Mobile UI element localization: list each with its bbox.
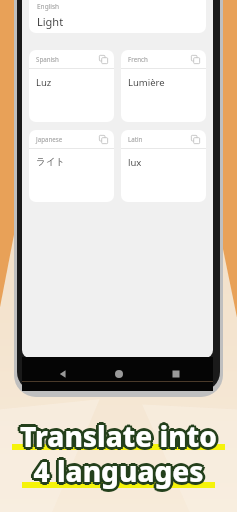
button[interactable]: French — [121, 50, 206, 122]
staticText: Japanese — [36, 135, 99, 143]
staticText: Lumière — [128, 76, 165, 89]
staticText: Translate into — [0, 415, 237, 453]
staticText: 4 languages — [2, 452, 237, 490]
button[interactable]: Copy Latin translation — [191, 135, 200, 144]
staticText: English — [37, 2, 60, 11]
staticText: 4 languages — [3, 452, 237, 490]
staticText: Translate into — [2, 417, 237, 455]
button[interactable]: Spanish — [29, 50, 114, 122]
button[interactable]: Copy French translation — [191, 55, 200, 64]
staticText: Translate into — [0, 417, 234, 455]
staticText: French — [128, 55, 191, 63]
staticText: 4 languages — [0, 449, 237, 487]
button[interactable]: Japanese — [29, 130, 114, 202]
button[interactable]: English — [29, 0, 206, 33]
button[interactable]: Recent apps — [168, 366, 184, 382]
staticText: Translate into — [0, 417, 237, 455]
staticText: Translate into — [0, 414, 237, 452]
staticText: Translate into — [0, 415, 235, 453]
staticText: 4 languages — [0, 450, 237, 488]
button[interactable]: Copy Japanese translation — [99, 135, 108, 144]
staticText: ライト — [36, 156, 66, 168]
staticText: Translate into — [0, 419, 237, 457]
staticText: Latin — [128, 135, 191, 143]
staticText: 4 languages — [0, 452, 235, 490]
staticText: Translate into — [0, 417, 235, 455]
button[interactable]: Back — [55, 366, 71, 382]
staticText: lux — [128, 156, 142, 169]
staticText: 4 languages — [2, 450, 237, 488]
staticText: Translate into — [0, 419, 235, 457]
staticText: 4 languages — [2, 454, 237, 492]
staticText: 4 languages — [0, 450, 235, 488]
staticText: 4 languages — [0, 454, 237, 492]
button[interactable]: Copy Spanish translation — [99, 55, 108, 64]
staticText: 4 languages — [0, 452, 234, 490]
staticText: 4 languages — [0, 454, 235, 492]
staticText: Light — [37, 14, 64, 29]
staticText: 4 languages — [0, 452, 237, 490]
staticText: Translate into — [2, 415, 237, 453]
staticText: Luz — [36, 76, 52, 89]
staticText: Spanish — [36, 55, 99, 63]
staticText: Translate into — [0, 420, 237, 458]
staticText: 4 languages — [0, 455, 237, 493]
staticText: Translate into — [3, 417, 237, 455]
staticText: Translate into — [2, 419, 237, 457]
button[interactable]: Latin — [121, 130, 206, 202]
button[interactable]: Home — [111, 366, 127, 382]
